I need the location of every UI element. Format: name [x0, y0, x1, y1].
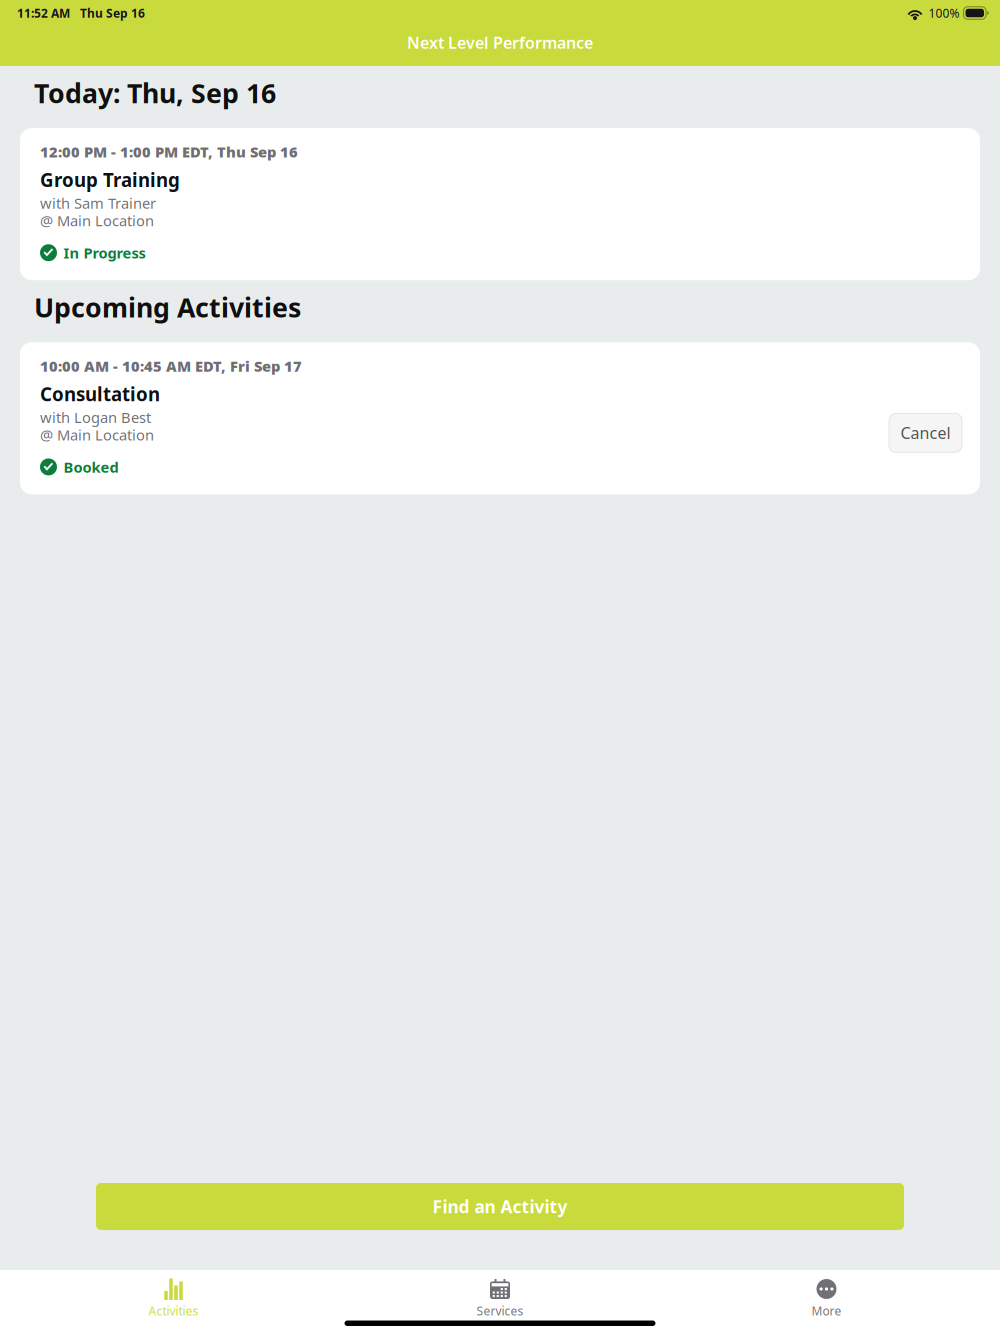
staticText: More: [811, 1303, 841, 1319]
staticText: In Progress: [63, 243, 145, 262]
button[interactable]: Find an Activity: [96, 1183, 904, 1230]
button[interactable]: Activities: [10, 1270, 337, 1334]
staticText: Upcoming Activities: [34, 289, 301, 325]
staticText: Booked: [63, 457, 118, 477]
button[interactable]: Cancel: [889, 413, 962, 452]
staticText: 100%: [928, 5, 959, 21]
staticText: @ Main Location: [40, 211, 154, 230]
staticText: Thu Sep 16: [80, 5, 145, 21]
staticText: Activities: [148, 1303, 198, 1319]
staticText: Group Training: [40, 167, 180, 192]
staticText: 10:00 AM - 10:45 AM EDT, Fri Sep 17: [40, 356, 302, 376]
staticText: 11:52 AM: [17, 5, 70, 21]
staticText: Find an Activity: [432, 1195, 567, 1218]
staticText: @ Main Location: [40, 425, 154, 444]
staticText: Services: [476, 1303, 523, 1319]
staticText: with Sam Trainer: [40, 193, 156, 213]
staticText: Next Level Performance: [407, 32, 593, 53]
staticText: with Logan Best: [40, 407, 151, 427]
staticText: Cancel: [900, 422, 950, 443]
button[interactable]: Services: [337, 1270, 663, 1334]
staticText: Consultation: [40, 382, 160, 406]
button[interactable]: More: [663, 1270, 990, 1334]
staticText: 12:00 PM - 1:00 PM EDT, Thu Sep 16: [40, 142, 298, 161]
staticText: Today: Thu, Sep 16: [34, 75, 276, 111]
